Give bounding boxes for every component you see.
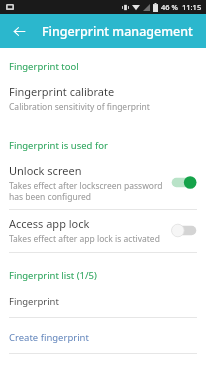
staticText: Fingerprint [9, 295, 59, 308]
button[interactable]: Fingerprint [0, 287, 206, 317]
staticText: 11:15 [182, 2, 202, 12]
staticText: Fingerprint list (1/5) [9, 269, 97, 282]
staticText: Takes effect after lockscreen password h… [9, 180, 164, 202]
button[interactable]: Fingerprint calibrate [0, 78, 206, 120]
button[interactable]: Toggle off [170, 223, 198, 238]
staticText: Fingerprint management [42, 23, 193, 40]
staticText: Fingerprint is used for [9, 139, 108, 152]
button[interactable]: Access app lock [0, 210, 206, 252]
staticText: 46 % [161, 2, 178, 12]
button[interactable]: Unlock screen [0, 157, 206, 209]
button[interactable]: Toggle on [170, 175, 198, 190]
staticText: Unlock screen [9, 163, 82, 178]
staticText: Access app lock [9, 216, 90, 231]
button[interactable]: Create fingerprint [0, 323, 206, 353]
staticText: Takes effect after app lock is activated [9, 233, 160, 245]
staticText: Calibration sensitivity of fingerprint [9, 101, 150, 113]
staticText: Fingerprint calibrate [9, 84, 115, 99]
staticText: Fingerprint tool [9, 60, 79, 73]
staticText: Create fingerprint [9, 331, 89, 344]
button[interactable]: Back [5, 17, 33, 45]
